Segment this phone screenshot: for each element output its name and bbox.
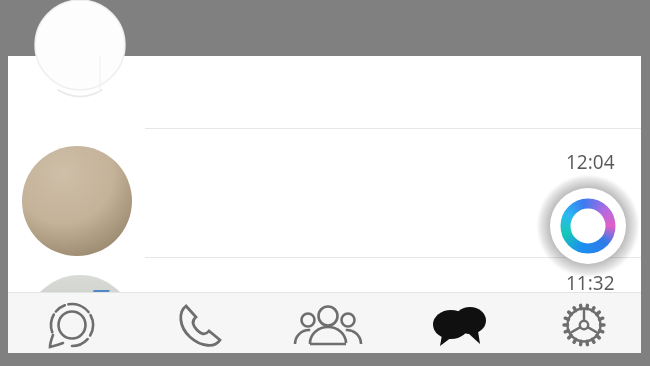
button[interactable]: Stories — [8, 292, 136, 353]
staticText: 11:32 — [566, 270, 615, 296]
button[interactable]: Assistant — [550, 188, 626, 264]
staticText: 12:04 — [566, 149, 615, 175]
button[interactable]: Settings — [520, 292, 641, 353]
button[interactable]: Calls — [136, 292, 264, 353]
button[interactable]: Chats — [392, 292, 520, 353]
button[interactable]: Contacts — [264, 292, 392, 353]
button[interactable] — [8, 129, 641, 257]
